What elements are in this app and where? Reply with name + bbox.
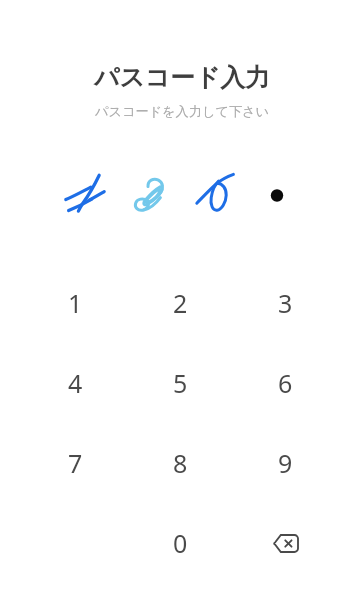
button[interactable]: 4 [22,343,128,423]
staticText: 5 [173,366,188,400]
button[interactable]: 6 [233,343,338,423]
button[interactable]: 9 [233,423,338,503]
staticText: 1 [68,286,83,320]
button[interactable]: 7 [22,423,128,503]
staticText: 2 [173,286,188,320]
button[interactable]: Backspace [233,503,338,583]
button[interactable]: 2 [128,263,233,343]
staticText: 8 [173,446,188,480]
button[interactable]: 3 [233,263,338,343]
button[interactable]: 1 [22,263,128,343]
staticText: 9 [278,446,293,480]
staticText: 6 [278,366,293,400]
staticText: 4 [68,366,83,400]
button[interactable]: 5 [128,343,233,423]
staticText: パスコード入力 [4,62,360,93]
staticText: 3 [278,286,293,320]
staticText: パスコードを入力して下さい [4,103,360,120]
button[interactable]: 0 [128,503,233,583]
staticText: 0 [173,526,188,560]
staticText: 7 [68,446,83,480]
button[interactable]: 8 [128,423,233,503]
